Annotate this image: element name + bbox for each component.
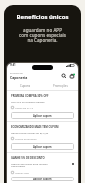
staticText: Promoções [53,84,68,88]
staticText: Ofertas exclusivas para clientes cadastr… [11,162,72,168]
button[interactable]: GANHE 5% DE DESCONTO [7,153,78,183]
staticText: Apenas hoje [15,171,29,174]
staticText: Válido até 31/12 [15,106,34,109]
staticText: 9:41 [10,63,16,67]
button[interactable]: Aplicar cupom [11,143,74,150]
staticText: PRIMEIRA COMPRA 30% OFF [11,94,49,98]
staticText: aguardam no APP com cupons especiais na … [4,27,81,44]
staticText: 30% OFF no primeiro pedido [11,100,74,103]
staticText: Benefícios únicos [4,13,81,21]
button[interactable]: Aplicar cupom [11,112,74,119]
button[interactable]: Search [61,73,67,79]
staticText: Cupons [20,84,30,88]
staticText: Aplicar cupom [33,177,52,181]
button[interactable]: Aplicar cupom [11,177,74,181]
button[interactable]: Cupons [7,81,42,90]
button[interactable]: PRIMEIRA COMPRA 30% OFF [7,91,78,121]
staticText: ECONOMIZANDO MAIS TEM CUPOM [11,125,59,129]
staticText: Cupom acumulável [15,137,37,140]
staticText: GANHE 5% DE DESCONTO [11,156,45,160]
button[interactable]: Cart [69,73,75,79]
staticText: Caponeria [10,75,28,80]
staticText: Aplicar cupom [33,145,52,149]
staticText: Ganhe pontos extras de R$ 5,00 [11,131,74,134]
staticText: Entrega em [10,71,23,74]
button[interactable]: ECONOMIZANDO MAIS TEM CUPOM [7,122,78,152]
staticText: Aplicar cupom [33,114,52,118]
button[interactable]: Promoções [42,81,78,90]
